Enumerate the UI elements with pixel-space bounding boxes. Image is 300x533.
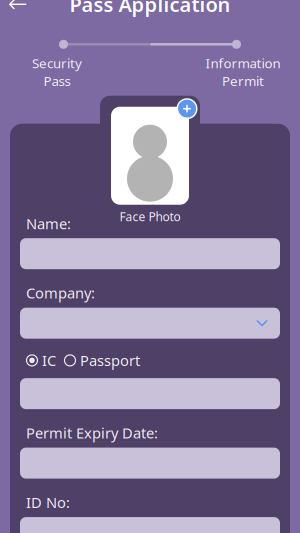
button[interactable]: IC: [26, 351, 56, 370]
button[interactable]: Text field: [20, 238, 280, 269]
staticText: IC: [42, 351, 56, 370]
staticText: Passport: [80, 351, 140, 370]
staticText: Face Photo: [119, 209, 180, 225]
staticText: Permit: [222, 72, 264, 90]
button[interactable]: Text field: [20, 378, 280, 409]
button[interactable]: Add face photo: [100, 96, 200, 233]
button[interactable]: Text field: [20, 448, 280, 479]
staticText: Pass Application: [69, 0, 230, 18]
staticText: Name:: [26, 214, 71, 233]
staticText: Pass: [43, 72, 70, 90]
button[interactable]: Text field: [20, 517, 280, 533]
staticText: Security: [32, 54, 82, 72]
staticText: ID No:: [26, 493, 70, 512]
button[interactable]: Passport: [64, 351, 140, 370]
staticText: Information: [205, 54, 280, 72]
staticText: Company:: [26, 283, 95, 303]
button[interactable]: Back: [0, 0, 36, 19]
button[interactable]: Select company: [20, 308, 280, 339]
staticText: Permit Expiry Date:: [26, 423, 158, 443]
